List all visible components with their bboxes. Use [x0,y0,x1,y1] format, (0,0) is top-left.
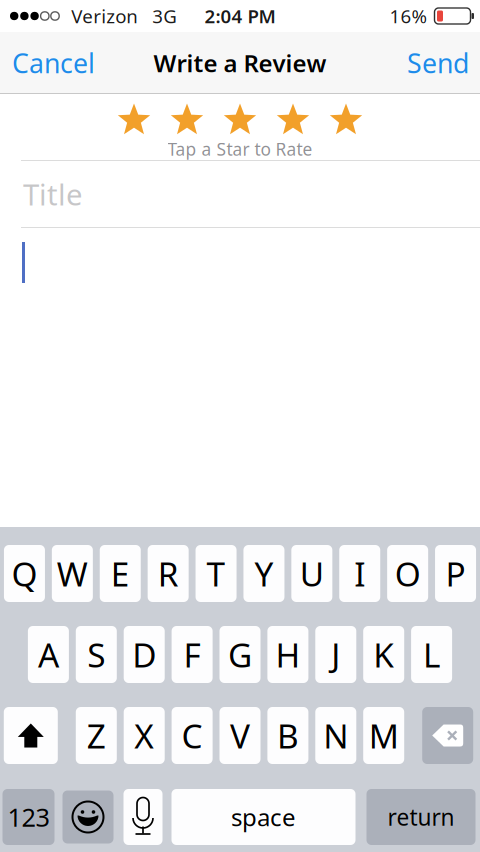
staticText: return [387,802,454,832]
button[interactable]: Rate star [170,103,204,137]
button[interactable]: G [219,626,260,683]
button[interactable]: Delete [422,707,473,764]
staticText: T [206,551,225,596]
button[interactable]: space [171,789,355,845]
staticText: Write a Review [153,47,326,79]
button[interactable]: A [28,626,69,683]
staticText: Title [23,174,83,213]
staticText: B [277,713,299,758]
button[interactable]: O [387,545,428,602]
button[interactable]: P [435,545,476,602]
button[interactable]: Dictation [123,789,162,845]
staticText: 123 [7,800,49,834]
button[interactable]: L [411,626,452,683]
staticText: Q [11,551,37,596]
button[interactable]: N [315,707,356,764]
staticText: Cancel [12,45,95,81]
button[interactable]: K [363,626,404,683]
button[interactable]: Rate star [329,103,363,137]
staticText: J [331,632,340,677]
button[interactable]: return [366,789,475,845]
button[interactable]: E [100,545,141,602]
staticText: O [395,551,421,596]
staticText: N [323,713,348,758]
button[interactable]: Rate star [223,103,257,137]
staticText: S [87,632,105,677]
button[interactable]: R [148,545,189,602]
button[interactable]: Send [391,32,480,94]
button[interactable]: Rate star [276,103,310,137]
button[interactable]: M [363,707,404,764]
button[interactable]: Rate star [117,103,151,137]
staticText: Tap a Star to Rate [167,137,312,160]
staticText: X [134,713,154,758]
button[interactable]: Z [76,707,117,764]
staticText: M [369,713,399,758]
staticText: Z [87,713,106,758]
staticText: C [182,713,203,758]
button[interactable]: Cancel [0,32,111,94]
button[interactable]: Y [243,545,284,602]
button[interactable]: V [219,707,260,764]
staticText: K [373,632,394,677]
button[interactable]: T [195,545,236,602]
button[interactable]: W [52,545,93,602]
button[interactable]: J [315,626,356,683]
staticText: space [231,801,296,833]
staticText: P [445,551,465,596]
staticText: L [423,632,440,677]
staticText: H [275,632,300,677]
button[interactable]: 123 [2,789,54,845]
staticText: 16% [389,4,427,28]
button[interactable]: D [124,626,165,683]
staticText: 2:04 PM [204,4,275,28]
button[interactable]: C [172,707,213,764]
staticText: R [158,551,179,596]
staticText: A [38,632,59,677]
staticText: W [57,551,88,596]
staticText: G [228,632,252,677]
button[interactable]: S [76,626,117,683]
button[interactable]: Q [4,545,45,602]
button[interactable]: H [267,626,308,683]
staticText: Send [407,45,469,81]
staticText: 3G [152,4,177,28]
button[interactable]: Shift [4,707,58,764]
staticText: I [354,551,365,596]
staticText: Y [254,551,273,596]
button[interactable]: I [339,545,380,602]
staticText: Verizon [71,4,138,28]
button[interactable]: U [291,545,332,602]
button[interactable]: B [267,707,308,764]
button[interactable]: Emoji [62,790,113,843]
staticText: V [230,713,250,758]
staticText: F [184,632,201,677]
staticText: U [300,551,324,596]
staticText: D [132,632,156,677]
staticText: E [111,551,130,596]
button[interactable]: X [124,707,165,764]
button[interactable]: F [172,626,213,683]
